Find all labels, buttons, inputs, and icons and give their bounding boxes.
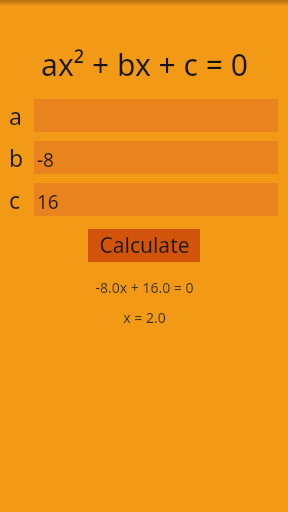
staticText: x = 2.0 bbox=[123, 308, 166, 327]
staticText: c bbox=[9, 184, 21, 215]
button[interactable]: 16 bbox=[34, 183, 278, 216]
button[interactable]: Calculate bbox=[88, 229, 200, 262]
staticText: ax² + bx + c = 0 bbox=[41, 44, 248, 85]
staticText: 16 bbox=[37, 189, 59, 215]
staticText: -8 bbox=[37, 147, 54, 173]
button[interactable]: -8 bbox=[34, 141, 278, 174]
staticText: -8.0x + 16.0 = 0 bbox=[95, 278, 194, 297]
staticText: Calculate bbox=[99, 231, 190, 260]
staticText: a bbox=[9, 100, 22, 131]
staticText: b bbox=[9, 142, 24, 173]
